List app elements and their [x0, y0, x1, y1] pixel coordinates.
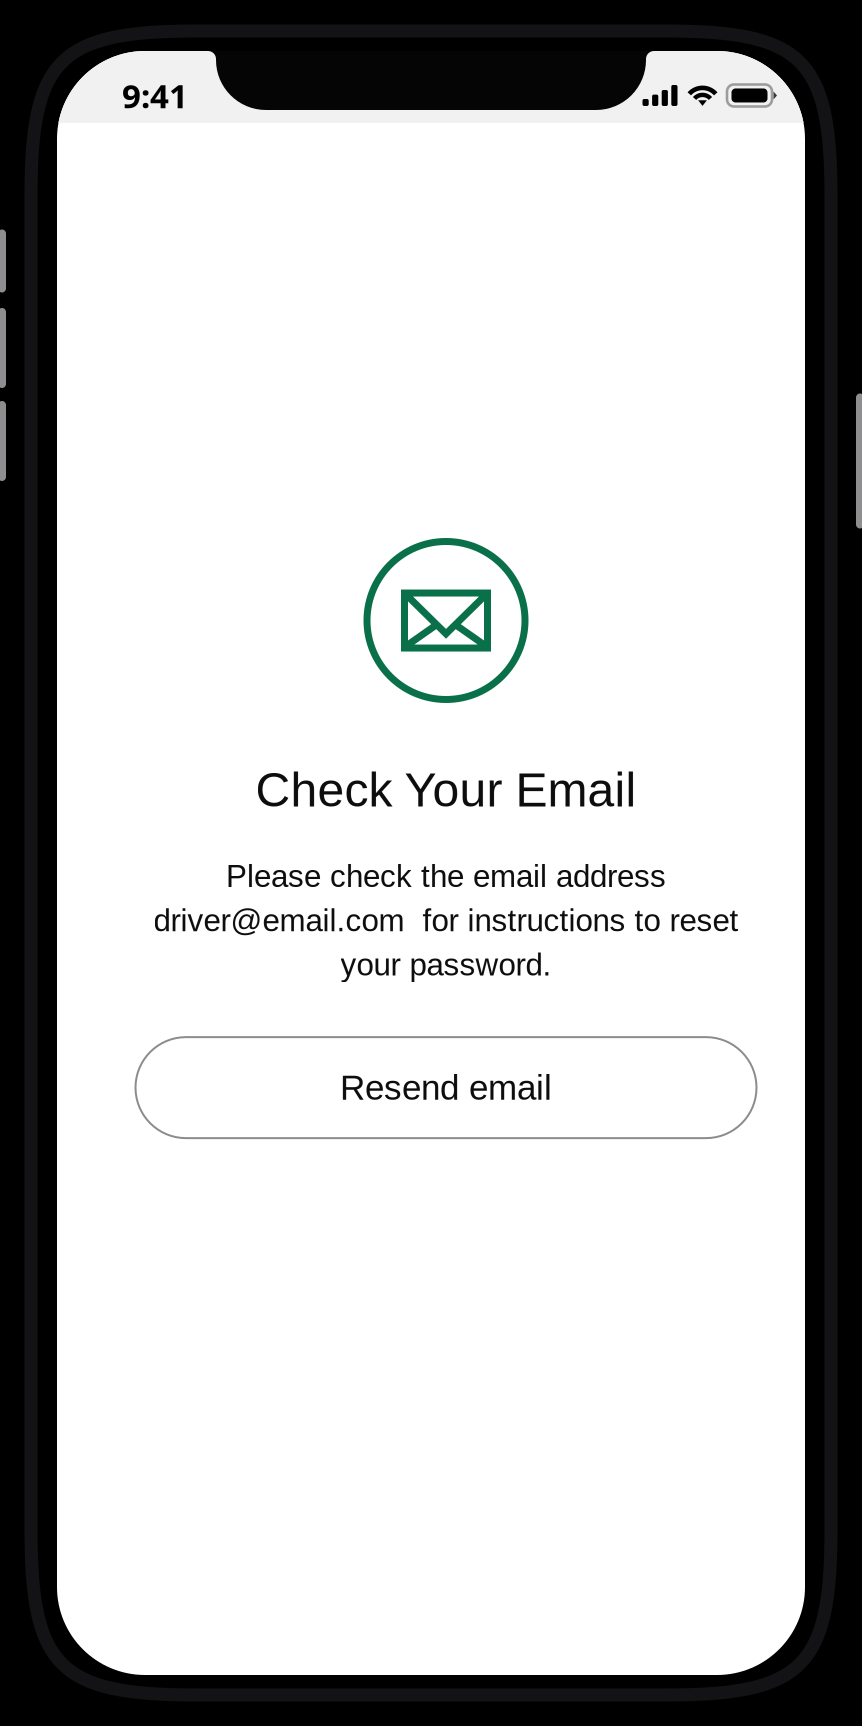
staticText: Resend email	[340, 1068, 552, 1107]
staticText: Please check the email address	[226, 859, 666, 894]
staticText: Check Your Email	[255, 763, 636, 817]
staticText: driver@email.com for instructions to res…	[153, 903, 738, 938]
staticText: your password.	[340, 947, 551, 982]
button[interactable]: Resend email	[135, 1037, 756, 1138]
staticText: 9:41	[122, 73, 188, 118]
